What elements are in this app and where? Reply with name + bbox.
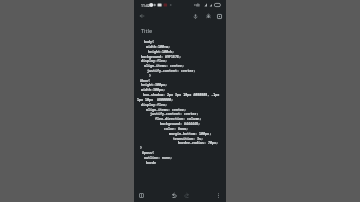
button[interactable]: Back	[136, 10, 148, 22]
staticText: body{	[144, 39, 155, 44]
staticText: background: #444448;	[160, 121, 201, 126]
staticText: #box{	[140, 78, 151, 83]
staticText: flex-direction: column;	[155, 116, 202, 121]
staticText: height:100vh;	[148, 49, 175, 54]
staticText: outline: none;	[144, 155, 173, 160]
staticText: display:flex;	[141, 58, 168, 63]
button[interactable]: Voice input	[189, 10, 201, 22]
staticText: color: #aaa;	[164, 126, 189, 131]
staticText: box-shadow: 2px 3px 10px #080808, -1px	[143, 92, 220, 97]
staticText: align-items: center;	[146, 107, 187, 112]
staticText: display:flex;	[141, 102, 168, 107]
staticText: justify-content: center;	[147, 68, 196, 73]
staticText: width:100vw;	[146, 44, 171, 49]
staticText: background: #9F5E7E;	[141, 54, 182, 59]
staticText: }	[140, 145, 143, 150]
staticText: 1px 10px #800000;	[137, 97, 174, 102]
button[interactable]: Undo	[170, 191, 179, 200]
staticText: height:300px;	[141, 82, 168, 87]
staticText: transition: 3s;	[173, 136, 204, 141]
staticText: Title	[141, 27, 153, 35]
staticText: margin-bottom: 100px;	[169, 131, 212, 136]
staticText: align-items: center;	[144, 63, 185, 68]
staticText: }	[149, 73, 152, 78]
button[interactable]: Settings	[202, 10, 214, 22]
staticText: justify-content: center;	[150, 111, 199, 116]
staticText: width:300px;	[141, 87, 166, 92]
staticText: border-radius: 70px;	[178, 140, 219, 145]
staticText: 11:42	[141, 3, 150, 8]
button[interactable]: Redo	[182, 191, 191, 200]
button[interactable]: Symbols	[137, 191, 146, 200]
staticText: #pass{	[142, 150, 155, 155]
button[interactable]: More options	[214, 191, 223, 200]
button[interactable]: Preview	[213, 10, 225, 22]
staticText: borde	[146, 160, 157, 165]
